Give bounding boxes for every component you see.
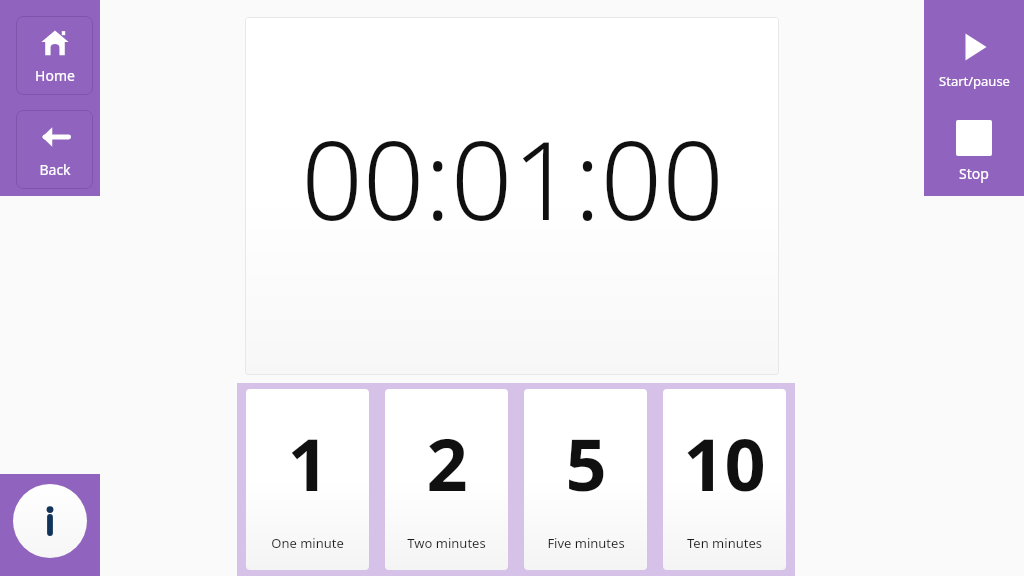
staticText: Stop	[959, 164, 989, 183]
button[interactable]: 10	[663, 389, 786, 570]
staticText: One minute	[271, 534, 344, 552]
button[interactable]: Stop	[924, 106, 1024, 188]
button[interactable]: 1	[246, 389, 369, 570]
button[interactable]: 2	[385, 389, 508, 570]
staticText: Home	[35, 66, 75, 85]
staticText: 5	[565, 414, 607, 512]
staticText: Two minutes	[407, 534, 486, 552]
staticText: 1	[287, 414, 329, 512]
staticText: Start/pause	[939, 72, 1010, 90]
staticText: 2	[426, 414, 468, 512]
staticText: 10	[683, 414, 766, 512]
staticText: Five minutes	[547, 534, 625, 552]
button[interactable]: 5	[524, 389, 647, 570]
button[interactable]: Home	[16, 16, 93, 95]
staticText: 00:01:00	[301, 105, 724, 252]
staticText: Ten minutes	[687, 534, 762, 552]
button[interactable]: Information	[13, 484, 87, 558]
staticText: Back	[39, 160, 71, 179]
button[interactable]: Back	[16, 110, 93, 189]
button[interactable]: Start/pause	[924, 14, 1024, 96]
